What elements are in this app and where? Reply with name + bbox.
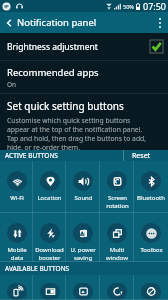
button[interactable]: Location	[33, 161, 66, 213]
staticText: Customise which quick setting buttons ap…	[7, 116, 147, 150]
staticText: Download booster	[35, 246, 64, 262]
staticText: Reset	[132, 151, 151, 161]
button[interactable]: Brightness adjustment	[0, 33, 168, 60]
staticText: Notification panel	[17, 16, 97, 29]
staticText: Brightness adjustment	[7, 41, 98, 53]
button[interactable]: Navigate up	[0, 12, 17, 33]
button[interactable]: sync	[100, 275, 134, 300]
staticText: 50%	[123, 3, 134, 10]
button[interactable]: Toolbox	[134, 213, 168, 262]
button[interactable]: mirror	[66, 275, 100, 300]
button[interactable]: Screen rotation	[100, 161, 134, 213]
staticText: AVAILABLE BUTTONS	[5, 264, 70, 273]
staticText: Multi window	[106, 246, 128, 262]
button[interactable]: More options	[152, 12, 168, 33]
button[interactable]: Multi window	[100, 213, 134, 262]
staticText: Location	[37, 194, 62, 202]
button[interactable]: Set quick setting buttons	[0, 94, 168, 150]
button[interactable]: Reset	[123, 150, 168, 161]
staticText: Mobile data	[7, 246, 27, 262]
staticText: Recommended apps	[7, 66, 99, 79]
button[interactable]: Bluetooth	[134, 161, 168, 213]
staticText: U. power saving	[70, 246, 96, 262]
button[interactable]: Sound	[66, 161, 100, 213]
staticText: Screen rotation	[106, 194, 129, 210]
button[interactable]: Wi-Fi	[0, 161, 33, 213]
button[interactable]: block	[134, 275, 168, 300]
button[interactable]: Recommended apps	[0, 61, 168, 93]
staticText: Bluetooth	[137, 194, 165, 202]
button[interactable]: U. power saving	[66, 213, 100, 262]
button[interactable]: nfc	[0, 275, 33, 300]
staticText: Set quick setting buttons	[7, 99, 124, 113]
staticText: Toolbox	[140, 246, 163, 254]
button[interactable]: sbeam	[33, 275, 66, 300]
staticText: Sound	[74, 194, 93, 202]
button[interactable]: Mobile data	[0, 213, 33, 262]
staticText: Wi-Fi	[10, 194, 24, 202]
staticText: 07:50	[143, 0, 167, 12]
staticText: On	[7, 80, 17, 89]
button[interactable]: Download booster	[33, 213, 66, 262]
staticText: ACTIVE BUTTONS	[5, 151, 58, 160]
